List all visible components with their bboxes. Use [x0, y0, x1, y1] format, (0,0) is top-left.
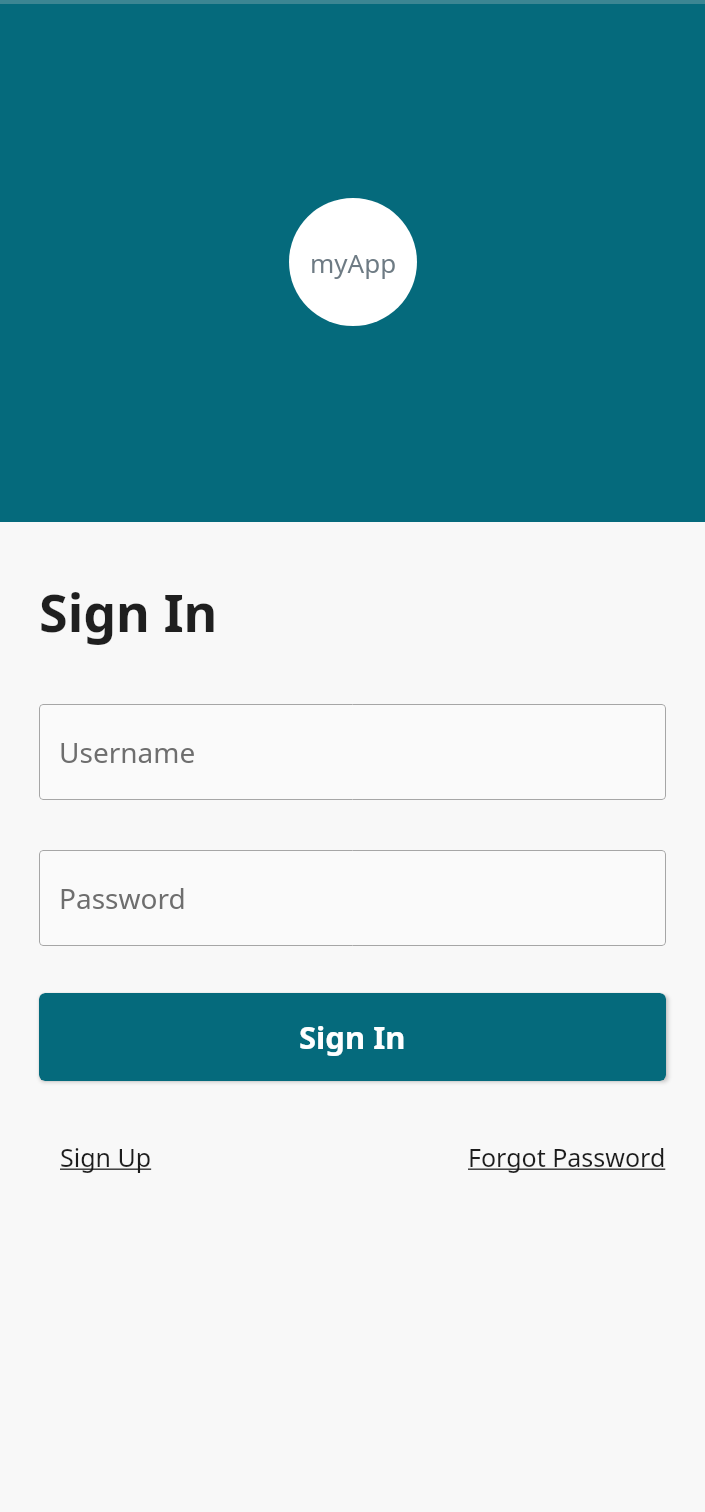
- staticText: Sign In: [299, 1016, 406, 1058]
- button[interactable]: Password: [39, 850, 666, 946]
- button[interactable]: Forgot Password: [468, 1135, 666, 1179]
- staticText: myApp: [310, 245, 397, 280]
- staticText: Forgot Password: [468, 1140, 666, 1174]
- staticText: Password: [59, 879, 186, 917]
- button[interactable]: Sign In: [39, 993, 666, 1081]
- button[interactable]: myApp: [289, 198, 417, 326]
- button[interactable]: Sign Up: [39, 1135, 173, 1179]
- button[interactable]: Username: [39, 704, 666, 800]
- staticText: Username: [59, 733, 196, 771]
- staticText: Sign Up: [60, 1140, 152, 1174]
- staticText: Sign In: [39, 576, 218, 647]
